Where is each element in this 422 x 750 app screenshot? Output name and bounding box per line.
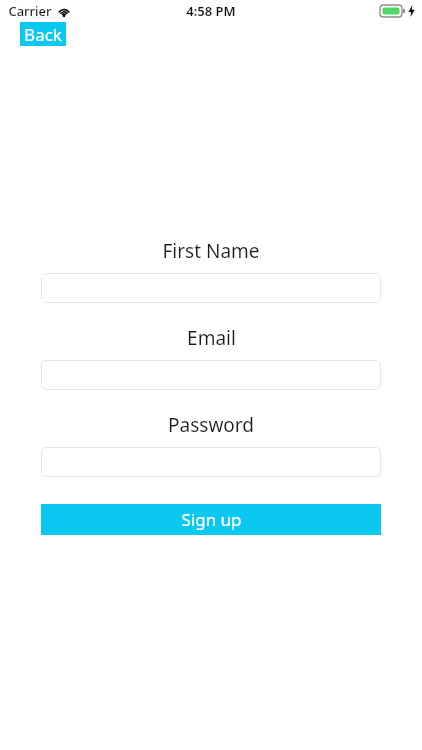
- staticText: Sign up: [181, 508, 242, 531]
- staticText: Carrier: [8, 2, 52, 20]
- staticText: Back: [24, 23, 62, 46]
- button[interactable]: Back: [20, 22, 66, 46]
- staticText: First Name: [162, 238, 260, 264]
- staticText: 4:58 PM: [186, 2, 236, 20]
- button[interactable]: [41, 273, 381, 303]
- staticText: Password: [168, 412, 254, 438]
- button[interactable]: [41, 360, 381, 390]
- button[interactable]: Sign up: [41, 504, 381, 535]
- button[interactable]: [41, 447, 381, 477]
- staticText: Email: [187, 325, 236, 351]
